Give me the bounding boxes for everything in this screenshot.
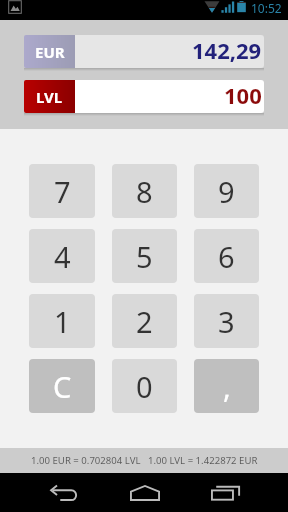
button[interactable]: 3	[194, 294, 259, 348]
button[interactable]: Home	[104, 473, 185, 512]
staticText: ,	[223, 367, 231, 406]
button[interactable]: 6	[194, 229, 259, 283]
staticText: 1.00 EUR = 0.702804 LVL	[31, 454, 141, 467]
staticText: EUR	[35, 42, 65, 62]
button[interactable]: Back	[23, 473, 104, 512]
staticText: 7	[54, 172, 71, 211]
staticText: 100	[224, 80, 262, 110]
button[interactable]: 100	[75, 80, 264, 113]
staticText: 9	[218, 172, 235, 211]
staticText: 8	[136, 172, 153, 211]
button[interactable]: C	[29, 359, 95, 413]
button[interactable]: 5	[112, 229, 177, 283]
other: Screenshot captured	[8, 0, 22, 14]
button[interactable]: Recent apps	[185, 473, 266, 512]
staticText: 3	[218, 302, 235, 341]
button[interactable]: 2	[112, 294, 177, 348]
button[interactable]: 9	[194, 164, 259, 218]
staticText: 4	[54, 237, 71, 276]
staticText: 6	[218, 237, 235, 276]
button[interactable]: 8	[112, 164, 177, 218]
button[interactable]: ,	[194, 359, 259, 413]
staticText: 142,29	[192, 35, 262, 65]
button[interactable]: 1	[29, 294, 95, 348]
button[interactable]: 7	[29, 164, 95, 218]
staticText: 5	[136, 237, 153, 276]
staticText: 2	[136, 302, 153, 341]
staticText: LVL	[36, 87, 63, 107]
button[interactable]: 142,29	[75, 35, 264, 68]
button[interactable]: 0	[112, 359, 177, 413]
staticText: 1	[54, 302, 71, 341]
button[interactable]: EUR	[24, 35, 75, 68]
staticText: 0	[136, 367, 153, 406]
button[interactable]: LVL	[24, 80, 75, 113]
button[interactable]: 4	[29, 229, 95, 283]
staticText: 10:52	[251, 0, 282, 16]
staticText: 1.00 LVL = 1.422872 EUR	[148, 454, 258, 467]
staticText: C	[53, 367, 72, 406]
